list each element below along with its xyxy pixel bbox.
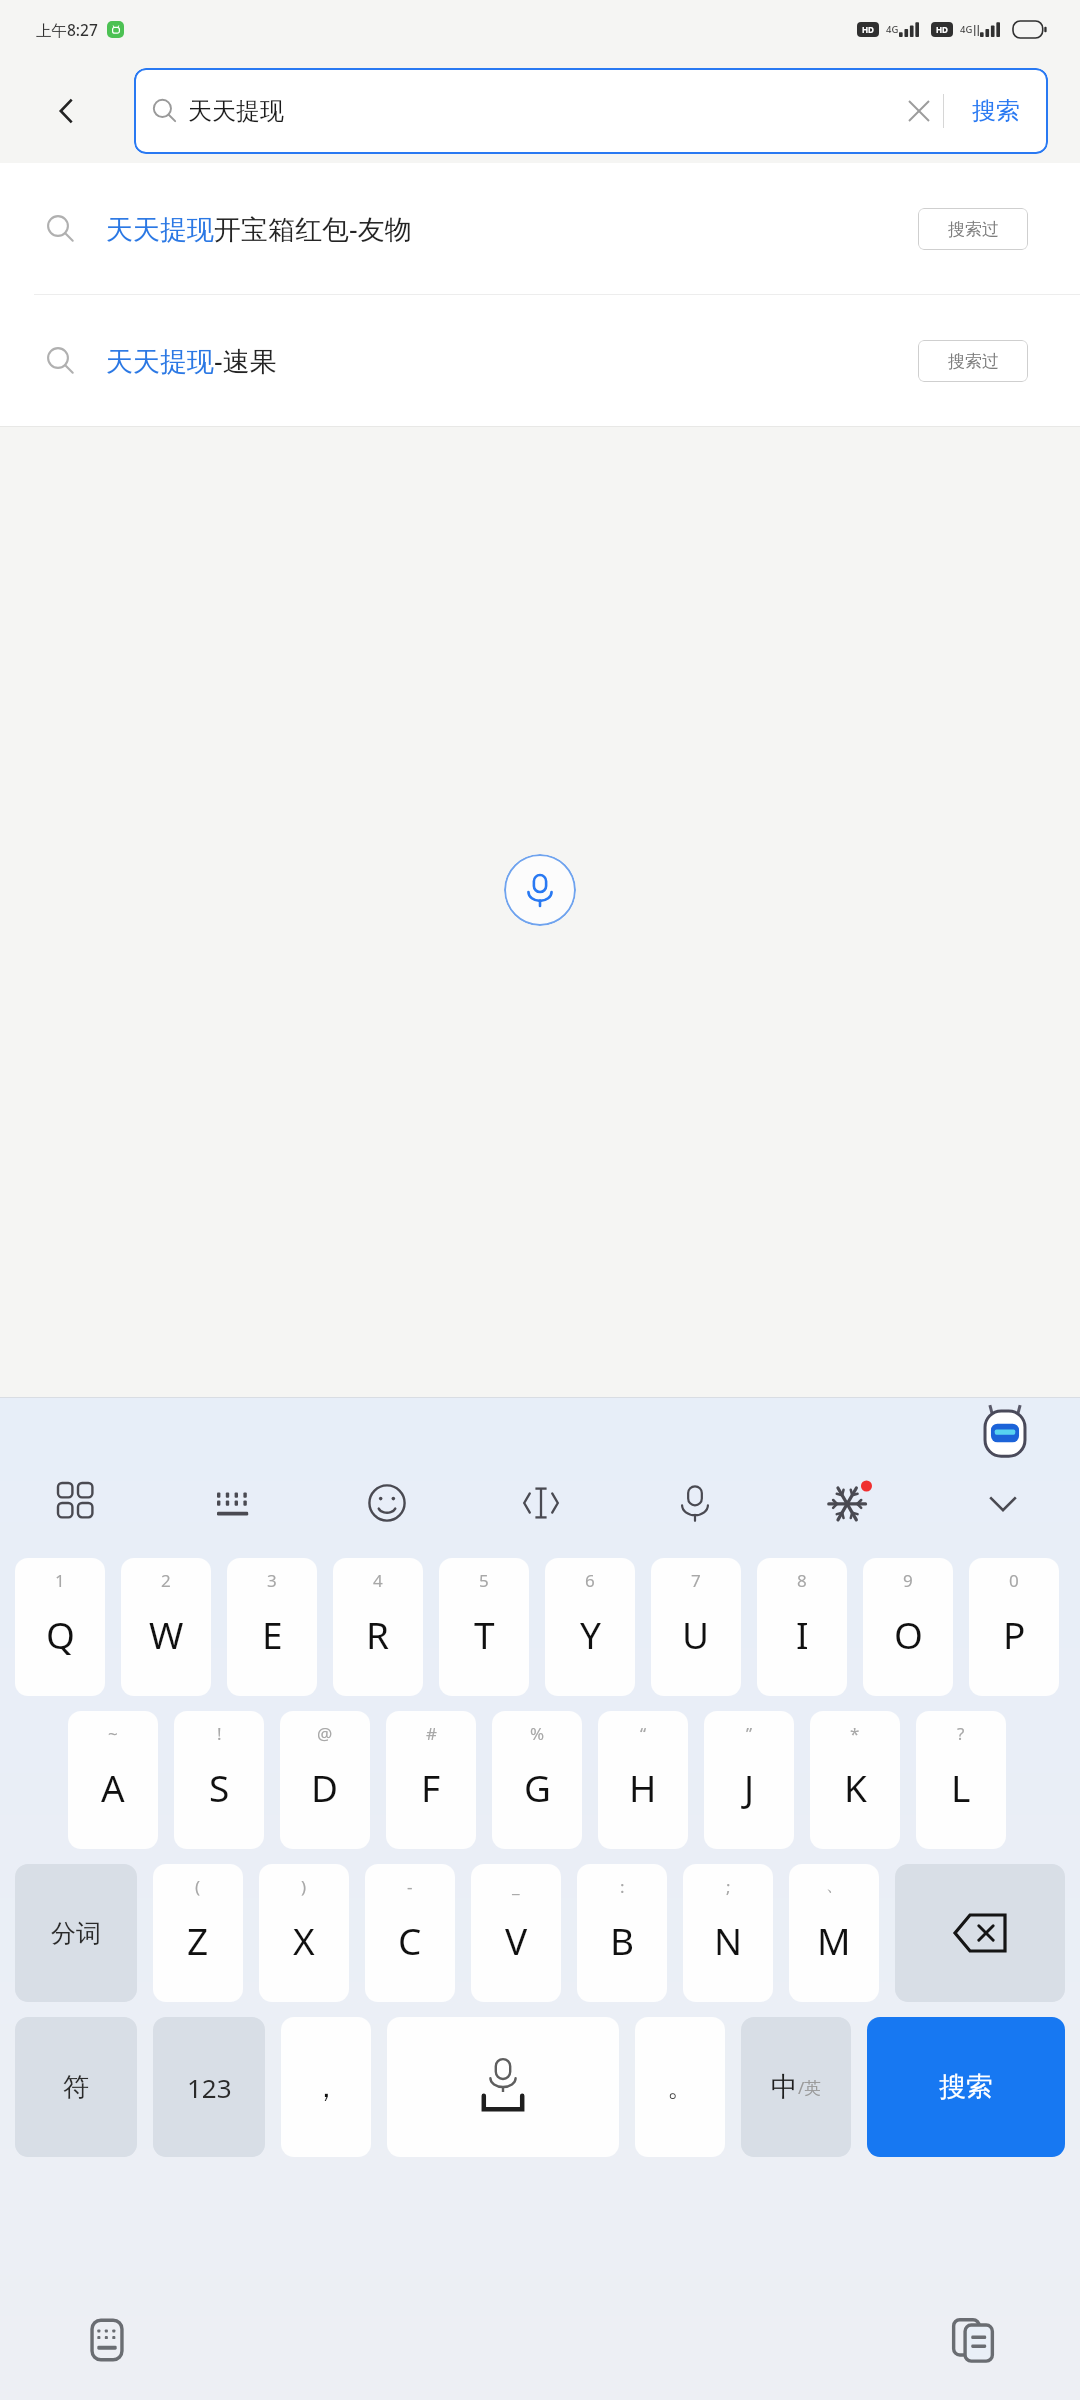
button[interactable]: 6: [545, 1558, 635, 1696]
button[interactable]: Backspace: [895, 1864, 1065, 2002]
staticText: ?: [957, 1722, 965, 1745]
button[interactable]: 天天提现-速果: [0, 295, 1080, 426]
staticText: V: [505, 1915, 528, 1965]
staticText: #: [426, 1722, 437, 1745]
staticText: J: [744, 1762, 755, 1812]
button[interactable]: ;: [683, 1864, 773, 2002]
button[interactable]: 符: [15, 2017, 137, 2157]
button[interactable]: Clipboard: [944, 2311, 1002, 2369]
button[interactable]: 天天提现: [134, 68, 1048, 154]
staticText: 4G: [960, 23, 973, 36]
button[interactable]: Keyboard layout: [155, 1455, 310, 1551]
button[interactable]: Panels: [0, 1455, 155, 1551]
button[interactable]: 天天提现开宝箱红包-友物: [0, 163, 1080, 294]
staticText: ;: [726, 1875, 731, 1898]
staticText: F: [421, 1762, 441, 1812]
button[interactable]: ”: [704, 1711, 794, 1849]
button[interactable]: _: [471, 1864, 561, 2002]
button[interactable]: ~: [68, 1711, 158, 1849]
staticText: 天天提现: [188, 96, 895, 126]
staticText: 4: [373, 1569, 383, 1592]
button[interactable]: 搜索过: [918, 340, 1028, 382]
staticText: 9: [903, 1569, 913, 1592]
staticText: R: [366, 1609, 390, 1659]
button[interactable]: Clear: [895, 87, 943, 135]
staticText: H: [629, 1762, 657, 1812]
staticText: !: [217, 1722, 222, 1745]
button[interactable]: Back: [0, 58, 134, 163]
staticText: M: [817, 1915, 851, 1965]
button[interactable]: 7: [651, 1558, 741, 1696]
staticText: 5: [479, 1569, 489, 1592]
button[interactable]: ?: [916, 1711, 1006, 1849]
button[interactable]: #: [386, 1711, 476, 1849]
staticText: Z: [187, 1915, 209, 1965]
staticText: 3: [267, 1569, 277, 1592]
button[interactable]: Edit text: [464, 1455, 618, 1551]
staticText: -: [407, 1875, 413, 1898]
staticText: ”: [746, 1722, 753, 1745]
staticText: 6: [585, 1569, 595, 1592]
staticText: U: [682, 1609, 710, 1659]
button[interactable]: 1: [15, 1558, 105, 1696]
staticText: HD: [862, 24, 874, 35]
staticText: 分词: [51, 1918, 101, 1949]
button[interactable]: !: [174, 1711, 264, 1849]
button[interactable]: %: [492, 1711, 582, 1849]
staticText: I: [796, 1609, 809, 1659]
button[interactable]: 9: [863, 1558, 953, 1696]
button[interactable]: -: [365, 1864, 455, 2002]
button[interactable]: @: [280, 1711, 370, 1849]
staticText: ): [301, 1875, 307, 1898]
button[interactable]: “: [598, 1711, 688, 1849]
button[interactable]: Assistant: [978, 1404, 1032, 1462]
button[interactable]: 搜索: [867, 2017, 1065, 2157]
staticText: 123: [187, 2070, 232, 2105]
staticText: ~: [108, 1722, 118, 1745]
button[interactable]: 123: [153, 2017, 265, 2157]
button[interactable]: Voice: [618, 1455, 772, 1551]
staticText: 搜索: [939, 2070, 993, 2104]
button[interactable]: 5: [439, 1558, 529, 1696]
staticText: A: [101, 1762, 125, 1812]
button[interactable]: 0: [969, 1558, 1059, 1696]
staticText: @: [317, 1722, 333, 1745]
staticText: %: [530, 1722, 545, 1745]
button[interactable]: Theme: [772, 1455, 926, 1551]
staticText: K: [844, 1762, 867, 1812]
staticText: 天天提现开宝箱红包-友物: [106, 210, 918, 247]
button[interactable]: ，: [281, 2017, 371, 2157]
button[interactable]: 中: [741, 2017, 851, 2157]
button[interactable]: Emoji: [310, 1455, 464, 1551]
button[interactable]: 8: [757, 1558, 847, 1696]
button[interactable]: 4: [333, 1558, 423, 1696]
button[interactable]: 搜索: [944, 68, 1048, 154]
button[interactable]: 分词: [15, 1864, 137, 2002]
staticText: 4G: [886, 23, 899, 36]
button[interactable]: (: [153, 1864, 243, 2002]
staticText: *: [850, 1722, 860, 1745]
button[interactable]: ): [259, 1864, 349, 2002]
staticText: E: [262, 1609, 283, 1659]
staticText: 。: [667, 2071, 693, 2104]
button[interactable]: *: [810, 1711, 900, 1849]
button[interactable]: Switch keyboard: [78, 2311, 136, 2369]
button[interactable]: Voice input: [504, 854, 576, 926]
button[interactable]: 、: [789, 1864, 879, 2002]
button[interactable]: Hide keyboard: [926, 1455, 1080, 1551]
staticText: T: [474, 1609, 495, 1659]
staticText: W: [149, 1609, 184, 1659]
staticText: 搜索过: [948, 219, 999, 240]
staticText: _: [512, 1875, 520, 1898]
staticText: (: [195, 1875, 201, 1898]
button[interactable]: 。: [635, 2017, 725, 2157]
staticText: 搜索: [972, 96, 1020, 126]
button[interactable]: :: [577, 1864, 667, 2002]
staticText: N: [714, 1915, 743, 1965]
staticText: C: [398, 1915, 422, 1965]
button[interactable]: 2: [121, 1558, 211, 1696]
button[interactable]: 3: [227, 1558, 317, 1696]
button[interactable]: 搜索过: [918, 208, 1028, 250]
button[interactable]: Space: [387, 2017, 619, 2157]
staticText: 符: [63, 2071, 89, 2104]
